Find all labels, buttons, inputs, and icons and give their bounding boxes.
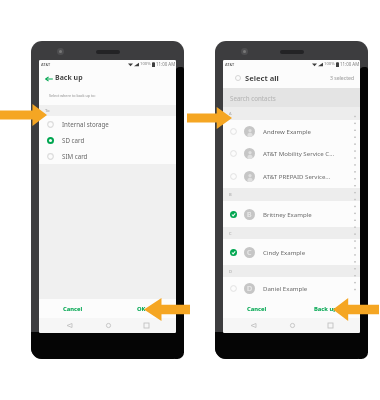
button[interactable]: Internal storage [39,116,176,132]
staticText: SD card [62,136,85,144]
staticText: Brittney Example [263,210,312,218]
staticText: Back up [314,305,337,313]
staticText: B [229,192,232,197]
button[interactable]: D [223,277,360,299]
button[interactable]: Navigate up [43,73,54,84]
staticText: Internal storage [62,120,109,128]
button[interactable]: Home [284,318,300,333]
button[interactable]: Back [245,318,261,333]
staticText: Andrew Example [263,127,311,135]
staticText: 100% [324,61,335,67]
staticText: OK [137,305,146,313]
staticText: 11:00 AM [340,61,360,67]
staticText: B [247,210,252,220]
button[interactable]: Andrew Example [223,120,360,142]
staticText: Cindy Example [263,248,306,256]
button[interactable]: C [223,239,360,265]
staticText: AT&T PREPAID Service... [263,172,331,180]
staticText: Daniel Example [263,284,308,292]
staticText: 3 selected [330,75,355,82]
button[interactable]: SIM card [39,148,176,164]
staticText: Select where to back up to: [49,93,96,98]
staticText: To [45,108,50,114]
staticText: SIM card [62,152,88,160]
staticText: C [247,248,252,258]
button[interactable]: AT&T PREPAID Service... [223,164,360,188]
staticText: 100% [140,61,151,67]
button[interactable]: Select all [223,68,360,88]
button[interactable]: AT&T Mobility Service C... [223,142,360,164]
staticText: A [229,111,232,116]
button[interactable]: Back up [291,299,360,318]
staticText: AT&T [41,62,51,67]
staticText: AT&T [225,62,235,67]
button[interactable]: SD card [39,132,176,148]
staticText: Select all [245,73,279,83]
staticText: AT&T Mobility Service C... [263,149,335,157]
button[interactable]: Home [100,318,116,333]
button[interactable]: Cancel [39,299,107,318]
button[interactable]: Back [61,318,77,333]
staticText: D [247,284,253,294]
staticText: C [229,231,232,236]
staticText: 11:00 AM [156,61,176,67]
button[interactable]: Recent apps [322,318,338,333]
staticText: Back up [55,73,83,83]
button[interactable]: Cancel [223,299,291,318]
staticText: Cancel [63,305,83,313]
staticText: Cancel [247,305,267,313]
button[interactable]: Recent apps [138,318,154,333]
staticText: D [229,269,232,274]
staticText: Search contacts [230,94,276,102]
button[interactable]: B [223,201,360,227]
button[interactable]: OK [107,299,176,318]
